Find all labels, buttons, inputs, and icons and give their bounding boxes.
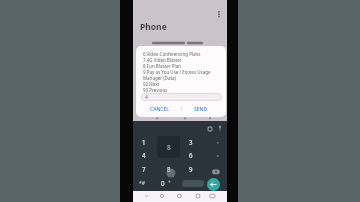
staticText: CANCEL	[150, 106, 169, 113]
button[interactable]	[182, 180, 204, 187]
staticText: 8	[167, 165, 171, 173]
staticText: 7.4G Video Blaster	[143, 57, 182, 63]
button[interactable]	[176, 193, 183, 199]
staticText: 93.Previous	[143, 87, 168, 93]
button[interactable]	[217, 125, 223, 132]
staticText: 0	[161, 179, 165, 187]
staticText: Phone	[140, 21, 167, 33]
staticText: 9	[189, 165, 193, 173]
button[interactable]	[207, 126, 213, 132]
staticText: 8.Fun Blaster Plan	[143, 63, 181, 69]
button[interactable]	[209, 193, 216, 199]
staticText: 6.Video Conferencing Plans	[143, 51, 201, 57]
staticText: 8	[167, 143, 171, 152]
staticText: 4	[142, 151, 146, 159]
staticText: 1	[142, 138, 146, 146]
staticText: 6	[189, 151, 193, 159]
staticText: 4	[145, 94, 148, 101]
button[interactable]	[217, 11, 222, 18]
staticText: 92.Next	[143, 81, 160, 87]
button[interactable]: CANCEL	[145, 104, 173, 114]
button[interactable]	[207, 178, 220, 191]
staticText: +	[168, 179, 171, 185]
staticText: *#	[139, 180, 145, 187]
staticText: Manager (Data)	[143, 75, 176, 81]
button[interactable]: SEND	[189, 104, 213, 114]
staticText: SEND	[194, 106, 208, 113]
button[interactable]	[212, 169, 220, 175]
button[interactable]	[159, 193, 165, 199]
staticText: 3	[189, 138, 193, 146]
button[interactable]	[144, 194, 150, 198]
button[interactable]: 4	[141, 93, 222, 101]
staticText: 7	[142, 165, 146, 173]
button[interactable]	[195, 193, 201, 199]
staticText: 9.Pay as You Use / Excess Usage	[143, 69, 211, 75]
